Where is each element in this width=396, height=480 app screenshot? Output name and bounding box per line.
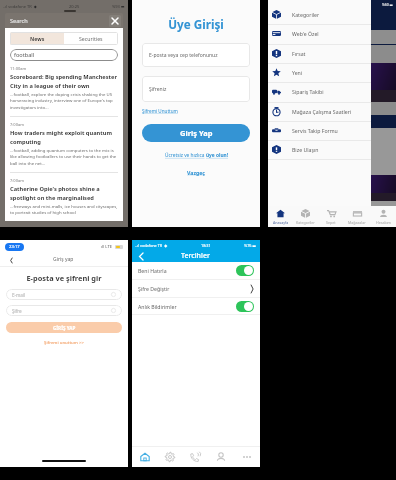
staticText: Servis Takip Formu xyxy=(292,127,338,134)
staticText: ..ıl vodafone TR ◆ xyxy=(3,4,37,9)
staticText: Bize Ulaşın xyxy=(292,146,319,153)
staticText: 20:25 xyxy=(69,4,80,9)
button[interactable]: Şifremi unuttum >> xyxy=(6,339,122,345)
staticText: 7:00am xyxy=(10,122,24,127)
button[interactable]: More xyxy=(234,447,260,467)
staticText: üye olun! xyxy=(206,152,228,159)
button[interactable]: Settings xyxy=(157,447,182,467)
button[interactable]: Sipariş Takibi xyxy=(268,82,371,101)
staticText: How traders might exploit quantum comput… xyxy=(10,129,118,145)
button[interactable]: Securities xyxy=(64,32,118,45)
staticText: ıll LTE xyxy=(101,244,113,250)
staticText: football xyxy=(14,51,35,59)
button[interactable]: Beni Hatırla xyxy=(132,262,260,279)
staticText: Securities xyxy=(79,35,103,42)
staticText: ...football, explore the doping crisis s… xyxy=(10,91,118,111)
staticText: ...freeways and mini-malls, ice houses a… xyxy=(10,203,118,216)
button[interactable]: E-mail xyxy=(12,289,116,300)
staticText: Şifre xyxy=(12,308,22,314)
staticText: GİRİŞ YAP xyxy=(53,325,76,331)
staticText: Ücretsiz ve hızlıca xyxy=(165,152,206,159)
staticText: 7:00am xyxy=(10,178,24,183)
staticText: %60 ▬ xyxy=(382,2,393,7)
button[interactable]: News xyxy=(10,32,64,45)
button[interactable]: Profile xyxy=(208,447,234,467)
button[interactable]: Giriş Yap xyxy=(142,124,250,142)
staticText: Mağazalar xyxy=(348,220,366,225)
staticText: Sepet xyxy=(326,220,336,225)
button[interactable]: Ücretsiz ve hızlıca xyxy=(142,152,250,159)
staticText: %93 ▬ xyxy=(112,4,125,9)
button[interactable]: Home xyxy=(132,447,157,467)
staticText: 23:17 xyxy=(9,244,20,250)
staticText: Yeni xyxy=(292,69,303,76)
button[interactable]: Servis Takip Formu xyxy=(268,121,371,140)
staticText: E-posta ve şifreni gir xyxy=(0,273,128,283)
button[interactable]: Kategoriler xyxy=(268,5,371,24)
staticText: Kategoriler xyxy=(292,11,320,18)
button[interactable]: Hesabım xyxy=(370,206,396,227)
button[interactable]: 7:00am xyxy=(10,178,118,216)
staticText: Giriş yap xyxy=(53,256,74,263)
button[interactable]: Şifre xyxy=(12,305,116,316)
staticText: Şifreniz xyxy=(149,86,167,93)
button[interactable]: 7:00am xyxy=(10,122,118,167)
button[interactable]: Sepet xyxy=(318,206,344,227)
staticText: 18:31 xyxy=(201,243,211,248)
staticText: %76 ▬ xyxy=(244,243,257,248)
staticText: ..ıl vodafone TR ◆ xyxy=(135,243,168,248)
staticText: Sipariş Takibi xyxy=(292,88,324,95)
button[interactable]: Fırsat xyxy=(268,44,371,63)
staticText: Scoreboard: Big spending Manchester City… xyxy=(10,73,118,89)
staticText: Mağaza Çalışma Saatleri xyxy=(292,108,352,115)
button[interactable]: Anlık Bildirimler xyxy=(132,298,260,314)
staticText: E-mail xyxy=(12,292,26,298)
button[interactable]: Kategoriler xyxy=(293,206,318,227)
button[interactable]: Şifreniz xyxy=(149,76,250,102)
staticText: Web'e Özel xyxy=(292,30,319,37)
button[interactable]: Close search xyxy=(109,15,121,27)
staticText: Anasayfa xyxy=(273,220,289,225)
button[interactable]: Şifre Değiştir xyxy=(132,280,260,297)
button[interactable]: Anasayfa xyxy=(268,206,293,227)
button[interactable]: E-posta veya cep telefonunuz xyxy=(149,43,250,67)
button[interactable]: Şifremi Unuttum xyxy=(142,108,178,114)
button[interactable]: GİRİŞ YAP xyxy=(6,322,122,333)
staticText: 11:00am xyxy=(10,66,27,71)
button[interactable]: Mağazalar xyxy=(344,206,370,227)
button[interactable]: Vazgeç xyxy=(142,169,250,176)
button[interactable]: football xyxy=(14,49,118,61)
staticText: Hesabım xyxy=(376,220,391,225)
staticText: Üye Girişi xyxy=(142,16,250,32)
staticText: Catherine Opie's photos shine a spotligh… xyxy=(10,185,118,201)
staticText: Beni Hatırla xyxy=(138,267,167,274)
button[interactable]: Back xyxy=(136,251,147,262)
staticText: Anlık Bildirimler xyxy=(138,303,177,310)
staticText: Şifre Değiştir xyxy=(138,285,170,292)
staticText: Search xyxy=(10,17,28,25)
staticText: Fırsat xyxy=(292,50,306,57)
staticText: Tercihler xyxy=(181,251,210,261)
button[interactable]: Web'e Özel xyxy=(268,24,371,43)
button[interactable]: Yeni xyxy=(268,63,371,82)
staticText: News xyxy=(30,35,45,42)
staticText: E-posta veya cep telefonunuz xyxy=(149,52,218,59)
button[interactable]: Back xyxy=(6,255,16,265)
button[interactable]: Bize Ulaşın xyxy=(268,140,371,159)
button[interactable]: Mağaza Çalışma Saatleri xyxy=(268,102,371,121)
staticText: Giriş Yap xyxy=(180,128,213,138)
staticText: ...football, adding quantum computers to… xyxy=(10,147,118,167)
staticText: Kategoriler xyxy=(296,220,315,225)
button[interactable]: 11:00am xyxy=(10,66,118,111)
button[interactable]: Support xyxy=(182,447,208,467)
